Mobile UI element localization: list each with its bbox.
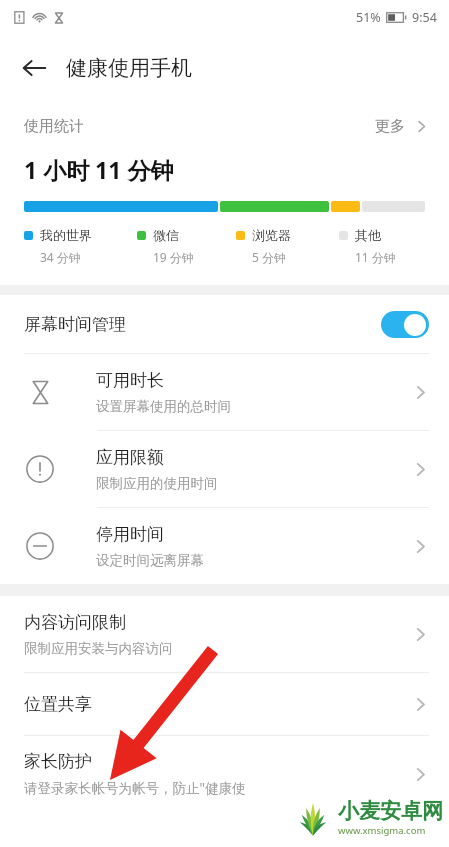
staticText: 51% (356, 9, 381, 26)
staticText: 11 分钟 (355, 249, 396, 265)
staticText: 内容访问限制 (24, 612, 126, 633)
staticText: 1 小时 11 分钟 (24, 154, 174, 185)
button[interactable]: 应用限额 (0, 431, 449, 507)
staticText: 微信 (153, 227, 179, 243)
button[interactable]: 停用时间 (0, 508, 449, 584)
staticText: 小麦安卓网 (338, 798, 443, 824)
button[interactable]: 位置共享 (0, 673, 449, 735)
button[interactable]: Screen time management toggle (381, 311, 429, 338)
staticText: 可用时长 (96, 370, 164, 391)
button[interactable]: 屏幕时间管理 (0, 295, 449, 353)
staticText: www.xmsigma.com (338, 824, 426, 837)
staticText: 5 分钟 (252, 249, 286, 265)
button[interactable]: Back (10, 44, 58, 92)
staticText: 9:54 (412, 9, 437, 26)
staticText: 家长防护 (24, 751, 92, 772)
staticText: 停用时间 (96, 524, 164, 545)
staticText: 设置屏幕使用的总时间 (96, 398, 231, 415)
staticText: 限制应用的使用时间 (96, 475, 218, 492)
button[interactable]: 使用统计 (0, 102, 449, 150)
button[interactable]: 内容访问限制 (0, 596, 449, 672)
staticText: 19 分钟 (153, 249, 194, 265)
staticText: 使用统计 (24, 117, 84, 136)
button[interactable]: 家长防护 (0, 736, 449, 812)
staticText: 我的世界 (40, 227, 92, 243)
button[interactable]: 可用时长 (0, 354, 449, 430)
staticText: 浏览器 (252, 227, 291, 243)
staticText: 限制应用安装与内容访问 (24, 640, 173, 657)
staticText: 设定时间远离屏幕 (96, 552, 204, 569)
staticText: 34 分钟 (40, 249, 81, 265)
staticText: 请登录家长帐号为帐号，防止"健康使 (24, 779, 246, 797)
staticText: 应用限额 (96, 447, 164, 468)
staticText: 位置共享 (24, 694, 92, 715)
staticText: 屏幕时间管理 (24, 314, 126, 335)
staticText: 更多 (375, 117, 405, 136)
staticText: 其他 (355, 227, 381, 243)
staticText: 健康使用手机 (66, 55, 192, 81)
